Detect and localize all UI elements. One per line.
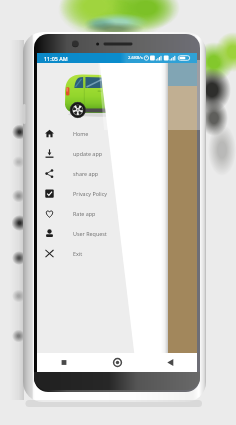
staticText: update app — [73, 150, 103, 157]
staticText: Rate app — [73, 210, 96, 217]
button[interactable]: Home — [91, 353, 144, 372]
staticText: Privacy Policy — [73, 190, 108, 197]
button[interactable]: Rate app — [37, 203, 168, 223]
staticText: 2.6KB/s — [128, 55, 143, 61]
button[interactable]: Exit — [37, 243, 168, 263]
button[interactable]: update app — [37, 143, 168, 163]
staticText: Exit — [73, 250, 83, 257]
button[interactable]: User Request — [37, 223, 168, 243]
button[interactable]: Recent apps — [37, 353, 91, 372]
staticText: User Request — [73, 230, 107, 237]
button[interactable]: Back — [144, 353, 197, 372]
staticText: Home — [73, 130, 89, 137]
staticText: 11:05 AM — [44, 55, 68, 62]
button[interactable]: Privacy Policy — [37, 183, 168, 203]
staticText: share app — [73, 170, 99, 177]
button[interactable]: share app — [37, 163, 168, 183]
button[interactable]: Home — [37, 123, 168, 143]
